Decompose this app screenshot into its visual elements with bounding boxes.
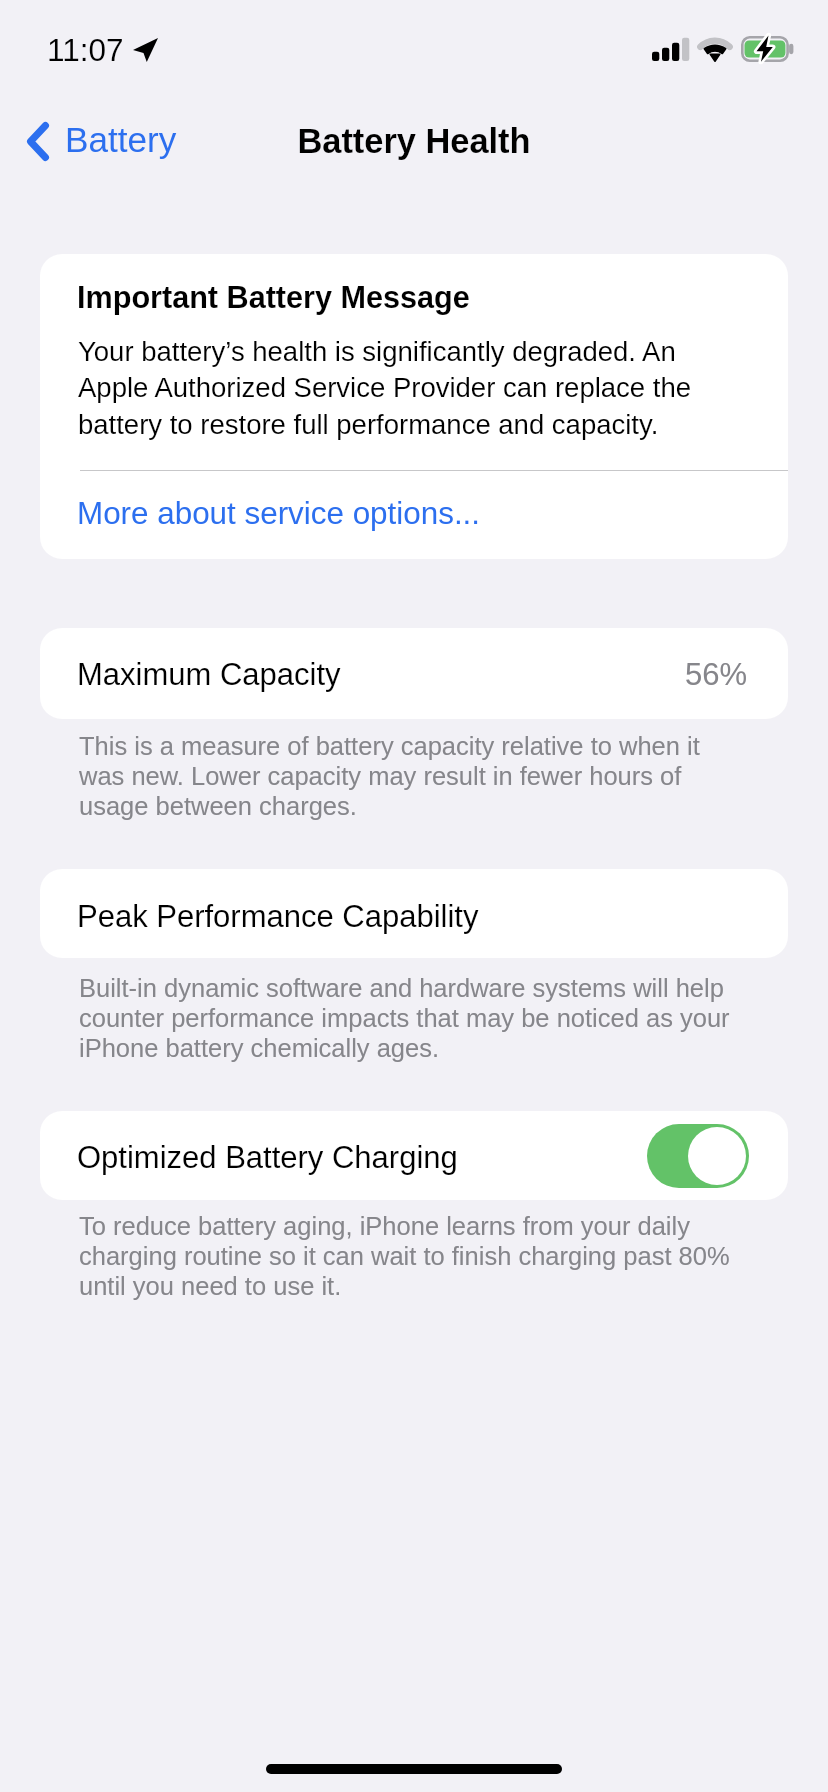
staticText: Optimized Battery Charging [77, 1140, 458, 1175]
button[interactable]: Optimized Battery Charging [647, 1124, 749, 1188]
staticText: Your battery’s health is significantly d… [78, 336, 750, 440]
staticText: Built-in dynamic software and hardware s… [79, 974, 752, 1062]
button[interactable]: Peak Performance Capability [40, 869, 788, 958]
button[interactable]: More about service options... [40, 471, 788, 559]
staticText: 11:07 [47, 32, 124, 67]
button[interactable]: Battery [0, 113, 193, 172]
other: Wi-Fi [699, 37, 731, 61]
staticText: More about service options... [77, 496, 481, 531]
button[interactable]: Maximum Capacity [40, 628, 788, 719]
staticText: Battery [65, 120, 177, 159]
other: Cellular signal [652, 38, 689, 61]
staticText: Battery Health [297, 122, 531, 160]
other: Battery charging [741, 36, 793, 62]
staticText: Peak Performance Capability [77, 899, 479, 934]
staticText: To reduce battery aging, iPhone learns f… [79, 1212, 752, 1300]
staticText: Important Battery Message [77, 280, 470, 314]
staticText: Maximum Capacity [77, 657, 341, 692]
staticText: This is a measure of battery capacity re… [79, 732, 752, 820]
staticText: 56% [685, 657, 748, 692]
